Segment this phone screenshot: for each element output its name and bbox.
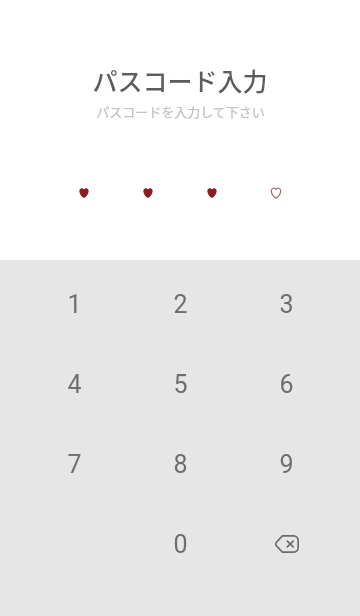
staticText: 2 [173,290,188,319]
staticText: 6 [279,370,294,399]
button[interactable]: 1 [41,271,107,337]
staticText: 8 [173,450,188,479]
button[interactable]: 2 [147,271,213,337]
staticText: 4 [67,370,82,399]
staticText: 1 [67,290,82,319]
staticText: パスコードを入力して下さい [96,102,265,121]
button[interactable]: 7 [41,431,107,497]
staticText: パスコード入力 [92,62,268,98]
button[interactable]: 6 [253,351,319,417]
button[interactable]: 3 [253,271,319,337]
button[interactable]: 9 [253,431,319,497]
staticText: 5 [173,370,188,399]
button[interactable]: 0 [147,511,213,577]
staticText: 7 [67,450,82,479]
button[interactable]: 8 [147,431,213,497]
staticText: 0 [173,530,188,559]
button[interactable]: 4 [41,351,107,417]
button[interactable]: 5 [147,351,213,417]
staticText: 3 [279,290,294,319]
button[interactable]: Delete [253,511,319,577]
staticText: 9 [279,450,294,479]
